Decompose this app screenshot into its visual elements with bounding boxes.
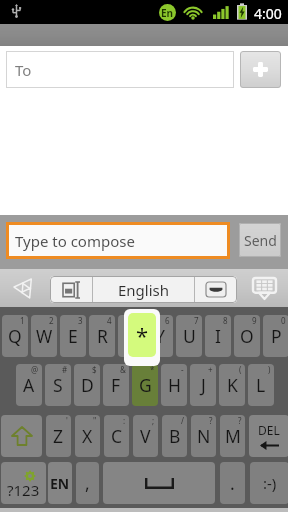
staticText: , <box>85 471 90 495</box>
staticText: En <box>161 6 174 20</box>
button[interactable]: H <box>161 364 187 406</box>
button[interactable]: Z <box>46 415 71 457</box>
staticText: . <box>230 471 235 495</box>
staticText: :-) <box>263 473 277 493</box>
button[interactable]: J <box>190 364 216 406</box>
button[interactable]: shift <box>1 415 42 457</box>
staticText: 6 <box>165 315 170 326</box>
staticText: - <box>181 364 184 375</box>
staticText: P <box>271 324 282 348</box>
button[interactable]: U <box>176 315 202 357</box>
button[interactable]: G <box>132 364 158 406</box>
staticText: G <box>139 373 152 397</box>
staticText: Q <box>8 324 22 348</box>
button[interactable]: B <box>162 415 187 457</box>
staticText: H <box>168 373 181 397</box>
staticText: * <box>136 320 149 350</box>
staticText: ; <box>152 415 155 426</box>
staticText: $ <box>92 364 97 375</box>
button[interactable]: Input method <box>50 276 92 303</box>
staticText: # <box>62 364 68 375</box>
button[interactable]: Type to compose <box>6 222 230 259</box>
button[interactable]: T <box>118 315 144 357</box>
staticText: V <box>140 424 151 448</box>
button[interactable]: A <box>16 364 42 406</box>
button[interactable]: Add recipient <box>240 51 281 88</box>
staticText: DEL <box>258 422 280 438</box>
button[interactable]: W <box>31 315 57 357</box>
button[interactable]: F <box>103 364 129 406</box>
button[interactable]: . <box>220 462 245 504</box>
button[interactable]: S <box>45 364 71 406</box>
staticText: S <box>53 373 63 397</box>
button[interactable]: E <box>60 315 86 357</box>
button[interactable]: I <box>205 315 231 357</box>
staticText: Type to compose <box>15 231 135 251</box>
button[interactable]: V <box>133 415 158 457</box>
button[interactable]: Voice input off <box>8 271 42 305</box>
staticText: A <box>23 373 35 397</box>
staticText: X <box>82 424 93 448</box>
staticText: ? <box>209 415 213 426</box>
staticText: 4:00 <box>254 4 282 23</box>
staticText: 0 <box>281 315 286 326</box>
button[interactable]: X <box>75 415 100 457</box>
button[interactable]: Y <box>147 315 173 357</box>
staticText: B <box>169 424 181 448</box>
button[interactable]: O <box>234 315 260 357</box>
button[interactable]: C <box>104 415 129 457</box>
staticText: * <box>150 364 155 375</box>
button[interactable]: P <box>263 315 288 357</box>
button[interactable]: , <box>76 462 99 504</box>
staticText: U <box>183 324 196 348</box>
button[interactable]: D <box>74 364 100 406</box>
staticText: W <box>36 324 53 348</box>
staticText: N <box>197 424 211 448</box>
staticText: 1 <box>20 315 25 326</box>
staticText: Send <box>244 231 277 250</box>
button[interactable]: Hide keyboard <box>247 271 282 306</box>
staticText: : <box>123 415 126 426</box>
staticText: ' <box>66 415 68 426</box>
staticText: English <box>118 280 170 300</box>
staticText: ) <box>268 364 271 375</box>
button[interactable]: K <box>219 364 245 406</box>
staticText: ( <box>239 364 242 375</box>
button[interactable]: Handwriting <box>195 276 237 303</box>
button[interactable]: :-) <box>250 462 288 504</box>
button[interactable]: M <box>220 415 245 457</box>
staticText: To <box>15 60 32 80</box>
button[interactable]: EN <box>48 462 72 504</box>
staticText: + <box>208 364 213 375</box>
staticText: 4 <box>107 315 112 326</box>
button[interactable]: L <box>248 364 274 406</box>
staticText: J <box>201 373 206 397</box>
staticText: EN <box>50 474 70 493</box>
staticText: @ <box>31 364 39 375</box>
staticText: 8 <box>223 315 228 326</box>
button[interactable]: To <box>6 51 234 88</box>
staticText: M <box>225 424 241 448</box>
button[interactable]: Send <box>239 223 281 257</box>
staticText: E <box>68 324 78 348</box>
staticText: D <box>81 373 94 397</box>
staticText: 9 <box>252 315 257 326</box>
button[interactable]: N <box>191 415 216 457</box>
staticText: & <box>120 364 126 375</box>
staticText: T <box>126 324 136 348</box>
button[interactable]: English <box>93 276 194 303</box>
staticText: 7 <box>194 315 199 326</box>
staticText: 3 <box>78 315 83 326</box>
staticText: Z <box>53 424 64 448</box>
staticText: K <box>227 373 238 397</box>
button[interactable]: space <box>103 462 215 504</box>
button[interactable]: ?123 <box>1 462 46 504</box>
button[interactable]: R <box>89 315 115 357</box>
button[interactable]: Q <box>2 315 28 357</box>
staticText: I <box>215 324 221 348</box>
staticText: C <box>111 424 123 448</box>
staticText: L <box>256 373 266 397</box>
button[interactable]: del <box>249 415 288 457</box>
staticText: F <box>111 373 121 397</box>
